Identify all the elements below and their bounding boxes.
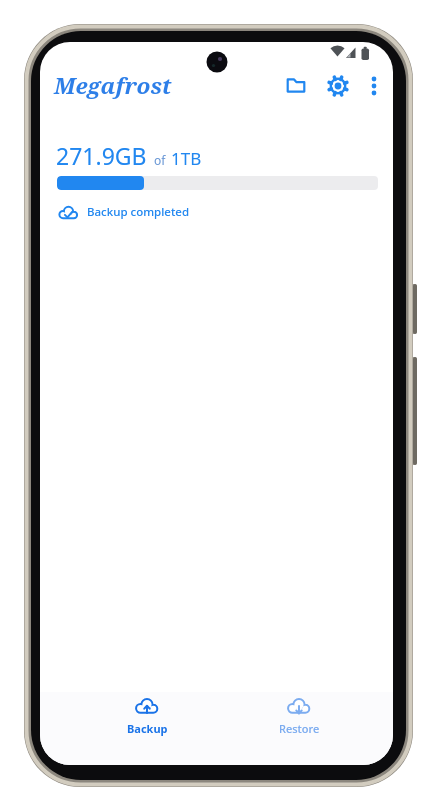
button[interactable] [324,72,352,100]
button[interactable]: Backup [102,697,192,736]
button[interactable] [360,72,388,100]
staticText: 1TB [171,147,202,170]
button[interactable]: Restore [254,697,344,736]
staticText: 271.9GB [56,140,147,171]
button[interactable]: Backup completed [57,202,190,222]
staticText: Megafrost [54,70,172,101]
staticText: Backup completed [87,204,190,220]
staticText: of [154,152,166,168]
button[interactable] [282,72,310,100]
staticText: Restore [279,721,320,736]
staticText: Backup [127,721,168,736]
